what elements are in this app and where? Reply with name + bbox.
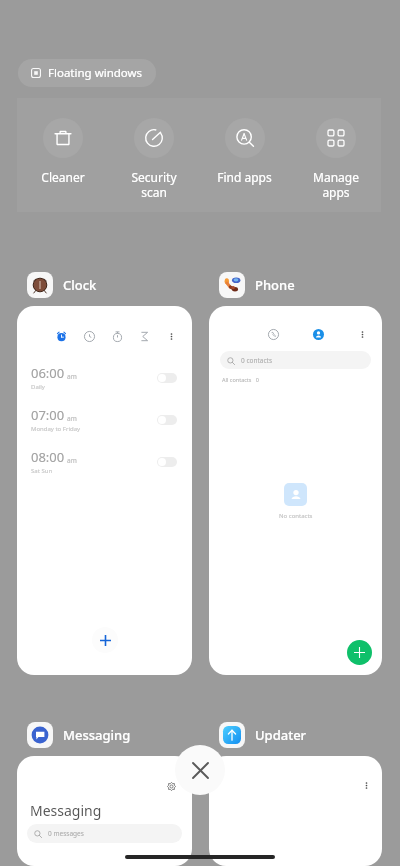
staticText: Manage apps xyxy=(313,169,359,200)
staticText: 0 messages xyxy=(48,829,84,838)
button[interactable]: World clock xyxy=(81,328,97,344)
button[interactable]: 06:00 xyxy=(31,364,177,391)
button[interactable]: Contacts xyxy=(310,326,326,342)
staticText: am xyxy=(67,414,77,423)
staticText: Sat Sun xyxy=(31,467,53,475)
staticText: Phone xyxy=(255,276,295,294)
staticText: 06:00 xyxy=(31,364,65,382)
button[interactable]: Add contact xyxy=(347,640,372,665)
button[interactable]: Floating windows xyxy=(18,59,156,87)
button[interactable]: Toggle alarm xyxy=(157,457,177,467)
staticText: Clock xyxy=(63,276,97,294)
button[interactable]: Find apps xyxy=(199,98,290,185)
button[interactable]: Toggle alarm xyxy=(157,373,177,383)
button[interactable]: Stopwatch xyxy=(109,328,125,344)
staticText: Messaging xyxy=(30,801,102,820)
staticText: Cleaner xyxy=(41,169,85,185)
button[interactable]: Manage apps xyxy=(290,98,381,200)
staticText: Security scan xyxy=(131,169,177,200)
staticText: Find apps xyxy=(217,169,272,185)
button[interactable]: Messaging xyxy=(27,722,131,748)
button[interactable]: Alarms xyxy=(53,328,69,344)
button[interactable]: More options xyxy=(209,756,382,866)
button[interactable]: Recents xyxy=(265,326,281,342)
button[interactable]: Recents xyxy=(209,306,382,675)
button[interactable]: More options xyxy=(358,777,374,793)
button[interactable]: Timer xyxy=(136,328,152,344)
button[interactable]: Toggle alarm xyxy=(157,415,177,425)
button[interactable]: 08:00 xyxy=(31,448,177,475)
staticText: Monday to Friday xyxy=(31,425,81,433)
button[interactable]: Clock xyxy=(27,272,97,298)
staticText: am xyxy=(67,456,77,465)
button[interactable]: Add alarm xyxy=(92,627,118,653)
button[interactable]: Phone xyxy=(219,272,295,298)
button[interactable]: Cleaner xyxy=(17,98,108,185)
button[interactable]: More options xyxy=(355,327,369,341)
staticText: 07:00 xyxy=(31,406,65,424)
button[interactable]: Alarms xyxy=(17,306,192,675)
button[interactable]: Settings xyxy=(163,778,179,794)
button[interactable]: 07:00 xyxy=(31,406,177,433)
staticText: Daily xyxy=(31,383,45,391)
staticText: Messaging xyxy=(63,726,131,744)
button[interactable]: Close all xyxy=(175,745,225,795)
button[interactable]: Settings xyxy=(17,756,192,866)
button[interactable]: Security scan xyxy=(108,98,199,200)
staticText: Floating windows xyxy=(48,65,143,81)
staticText: Updater xyxy=(255,726,307,744)
staticText: All contacts 0 xyxy=(222,376,259,383)
button[interactable]: More options xyxy=(164,329,178,343)
button[interactable]: 0 contacts xyxy=(220,351,371,369)
button[interactable]: Updater xyxy=(219,722,307,748)
staticText: am xyxy=(67,372,77,381)
staticText: 0 contacts xyxy=(241,356,273,365)
button[interactable]: 0 messages xyxy=(27,824,182,843)
staticText: 08:00 xyxy=(31,448,65,466)
staticText: No contacts xyxy=(279,512,313,520)
